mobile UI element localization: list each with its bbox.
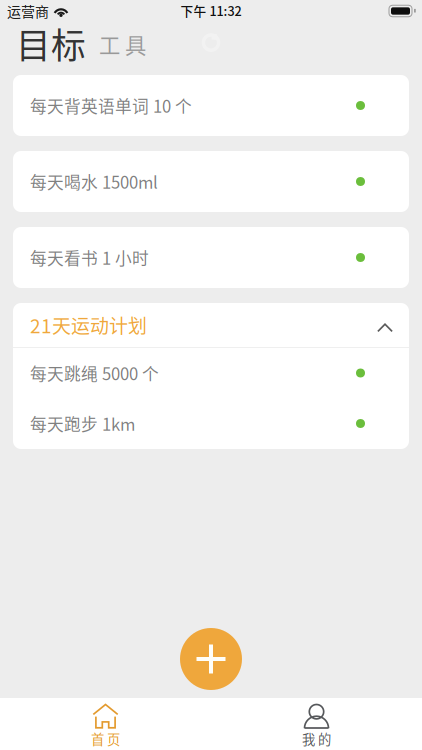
staticText: 运营商	[7, 1, 49, 21]
staticText: 我 的	[302, 729, 331, 748]
button[interactable]: 每天喝水 1500ml	[13, 151, 409, 212]
staticText: 下午 11:32	[180, 1, 241, 20]
staticText: 每天跳绳 5000 个	[30, 361, 159, 385]
button[interactable]: 每天背英语单词 10 个	[13, 75, 409, 136]
staticText: 每天看书 1 小时	[30, 245, 149, 269]
button[interactable]: 每天跑步 1km	[13, 398, 409, 449]
staticText: 每天跑步 1km	[30, 411, 135, 435]
staticText: 目标	[16, 18, 86, 69]
staticText: 21天运动计划	[30, 311, 147, 339]
button[interactable]: 我 的	[211, 698, 422, 750]
button[interactable]: Add goal	[180, 628, 242, 690]
button[interactable]: 每天跳绳 5000 个	[13, 348, 409, 398]
button[interactable]: 每天看书 1 小时	[13, 227, 409, 288]
staticText: 每天喝水 1500ml	[30, 169, 158, 193]
staticText: 每天背英语单词 10 个	[30, 93, 192, 117]
staticText: 工 具	[99, 29, 146, 60]
button[interactable]: 21天运动计划	[13, 303, 409, 347]
staticText: 首 页	[91, 729, 120, 748]
button[interactable]: 首 页	[0, 698, 211, 750]
